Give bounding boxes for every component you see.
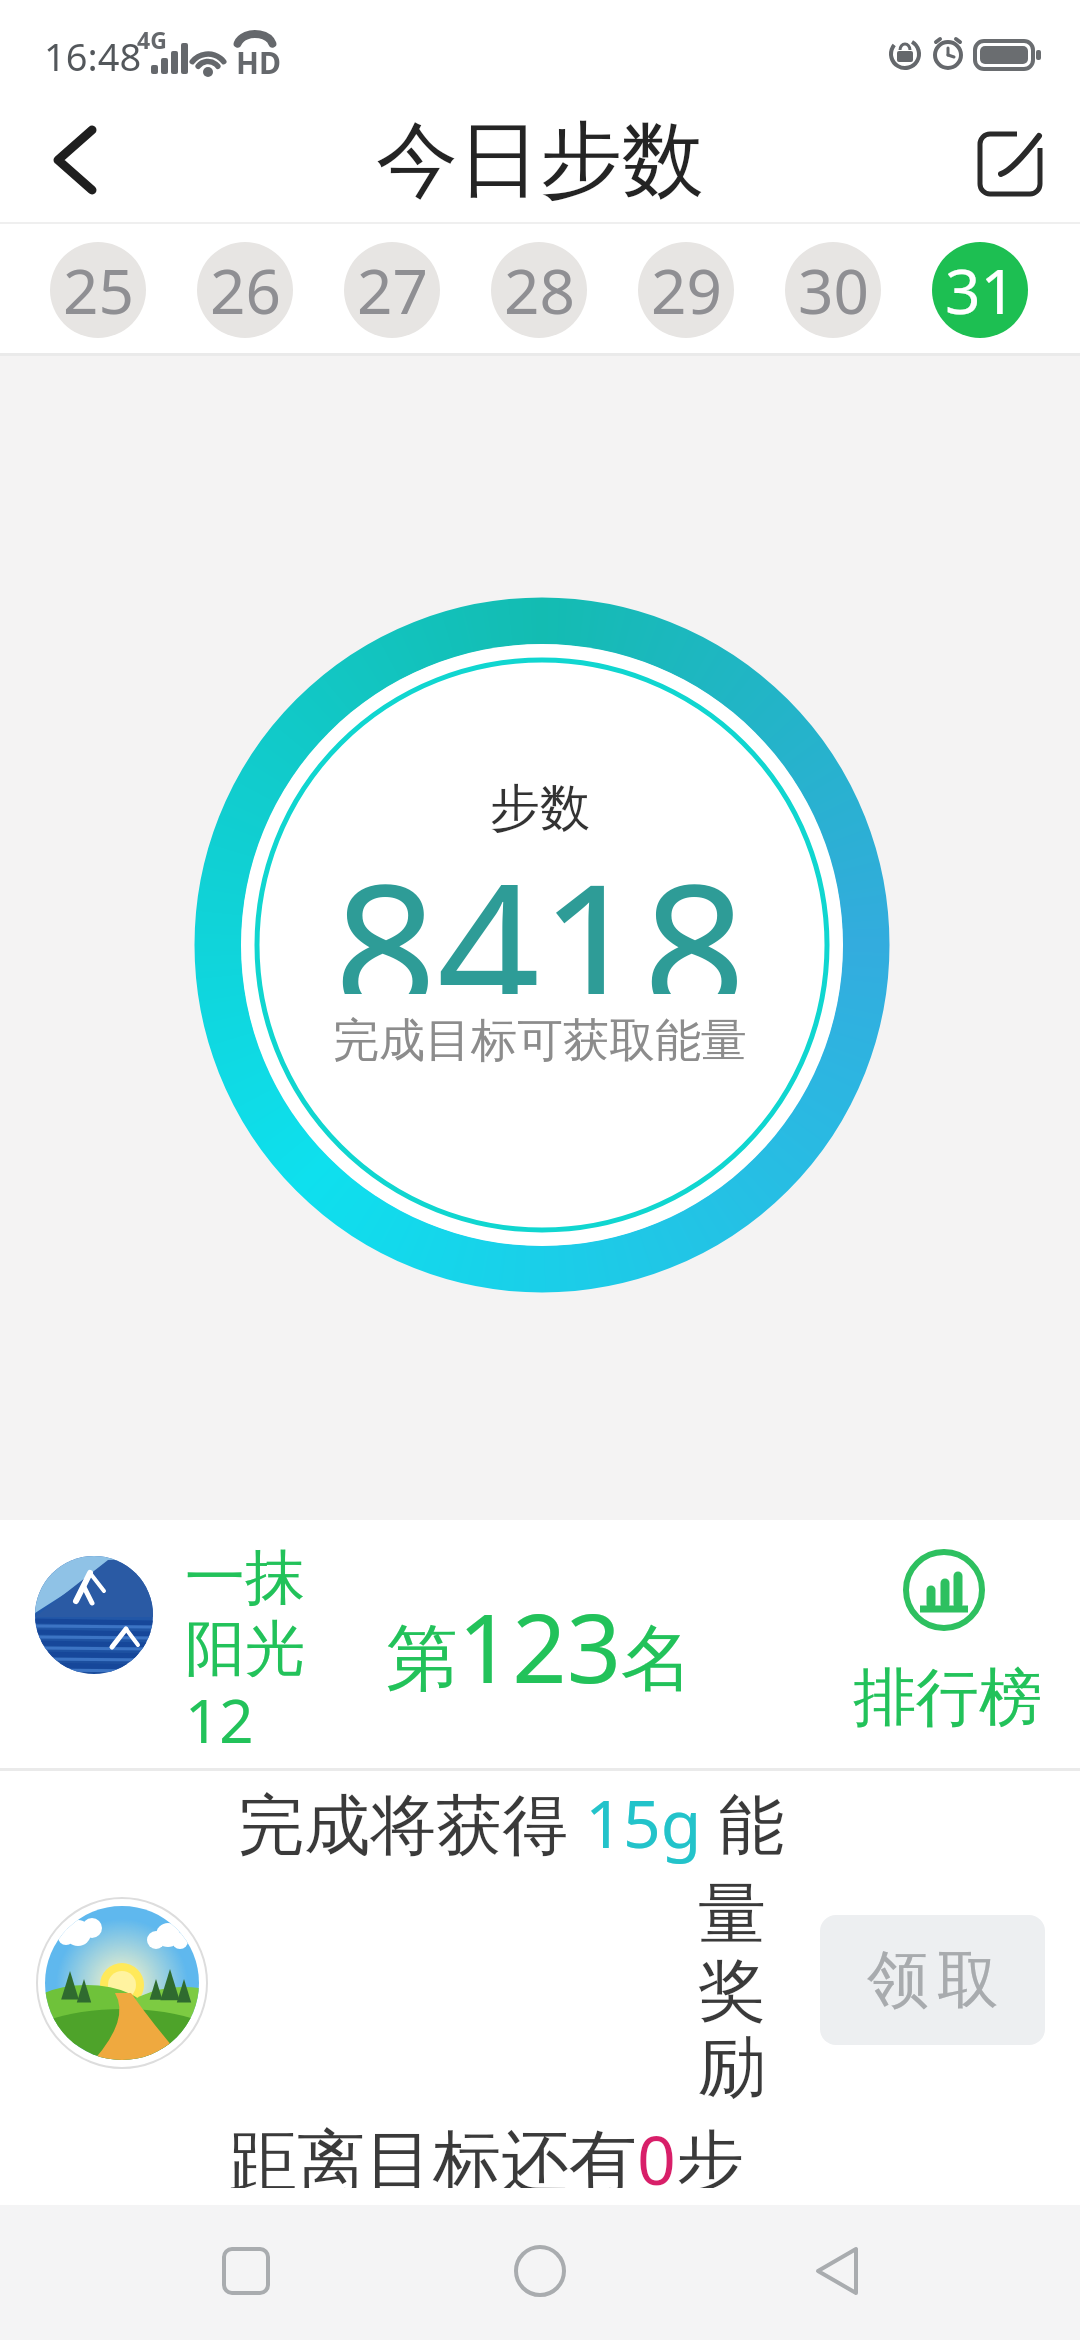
staticText: 27 [357,248,428,332]
staticText: 第123名 [386,1581,694,1701]
button[interactable]: 领取 [820,1915,1045,2045]
button[interactable] [955,108,1065,212]
staticText: 4G [137,24,167,55]
button[interactable]: 排行榜 [845,1530,1050,1740]
staticText: 完成目标可获取能量 [333,1012,747,1070]
staticText: 距离目标还有0步 [229,2112,744,2188]
staticText: 一抹阳光12 [185,1540,325,1760]
staticText: 完成将获得 15g 能 [238,1777,785,1867]
button[interactable] [30,112,126,208]
button[interactable]: 31 [932,242,1028,338]
staticText: 26 [210,248,281,332]
staticText: 16:48 [44,30,142,82]
staticText: 步数 [490,777,590,840]
staticText: 今日步数 [376,109,704,212]
staticText: 领取 [863,1941,1003,2019]
button[interactable] [0,1520,1080,1768]
button[interactable] [787,2221,887,2321]
button[interactable]: 25 [50,242,146,338]
button[interactable]: 27 [344,242,440,338]
button[interactable] [490,2221,590,2321]
button[interactable]: 29 [638,242,734,338]
staticText: HD [236,42,281,83]
staticText: 31 [945,248,1016,332]
button[interactable]: 26 [197,242,293,338]
staticText: 29 [651,248,722,332]
staticText: 28 [504,248,575,332]
staticText: 8418 [334,822,746,994]
button[interactable]: 30 [785,242,881,338]
staticText: 量 奖 励 [692,1872,772,2110]
staticText: 25 [63,248,134,332]
staticText: 排行榜 [853,1658,1042,1728]
staticText: 30 [798,248,869,332]
button[interactable] [196,2221,296,2321]
button[interactable]: 28 [491,242,587,338]
